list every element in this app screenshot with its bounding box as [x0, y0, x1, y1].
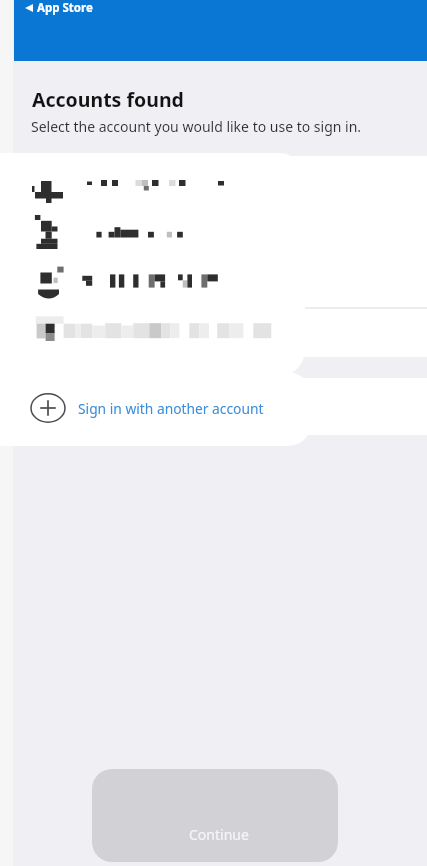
staticText: App Store — [37, 0, 93, 16]
staticText: Accounts found — [32, 86, 184, 113]
button[interactable]: Continue — [92, 769, 338, 862]
staticText: Select the account you would like to use… — [31, 117, 362, 136]
button[interactable]: Sign in with another account — [0, 376, 427, 440]
staticText: Sign in with another account — [78, 399, 264, 418]
staticText: Continue — [189, 825, 249, 844]
button[interactable]: App Store — [14, 0, 427, 61]
